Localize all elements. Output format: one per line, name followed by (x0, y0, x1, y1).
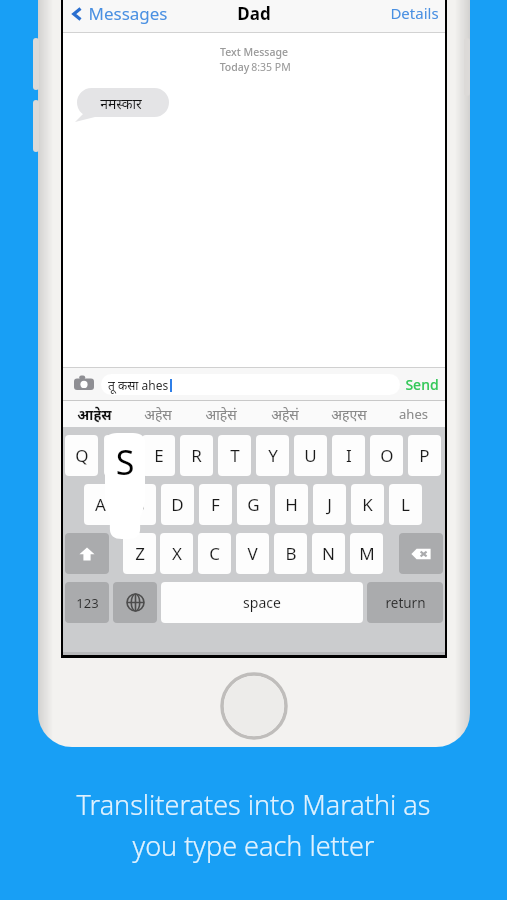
staticText: D (171, 493, 184, 516)
button[interactable]: R (180, 435, 213, 476)
button[interactable]: आहेस (63, 401, 126, 427)
button[interactable]: C (198, 533, 231, 574)
button[interactable]: Backspace (399, 533, 443, 574)
staticText: V (247, 542, 258, 565)
staticText: S (97, 439, 153, 485)
button[interactable]: Z (123, 533, 156, 574)
button[interactable]: E (142, 435, 175, 476)
button[interactable]: Y (256, 435, 289, 476)
button[interactable]: F (199, 484, 232, 525)
button[interactable]: Switch language (113, 582, 157, 623)
staticText: Y (268, 444, 278, 467)
staticText: आहेस (77, 405, 112, 424)
button[interactable]: L (389, 484, 422, 525)
staticText: Z (135, 542, 145, 565)
staticText: space (243, 593, 281, 612)
staticText: A (95, 493, 106, 516)
button[interactable]: आहेसं (189, 401, 253, 427)
staticText: अहएस (331, 405, 367, 424)
button[interactable]: U (294, 435, 327, 476)
button[interactable]: I (332, 435, 365, 476)
button[interactable]: T (218, 435, 251, 476)
staticText: Text Message (220, 45, 288, 59)
staticText: H (285, 493, 298, 516)
button[interactable]: X (160, 533, 193, 574)
staticText: M (359, 542, 375, 565)
staticText: Details (390, 3, 439, 23)
button[interactable]: K (351, 484, 384, 525)
staticText: J (327, 493, 332, 516)
staticText: अहेसं (271, 405, 299, 424)
button[interactable]: ahes (381, 401, 445, 427)
button[interactable]: V (236, 533, 269, 574)
staticText: Messages (88, 2, 168, 25)
staticText: T (230, 444, 240, 467)
button[interactable]: B (274, 533, 307, 574)
staticText: P (419, 444, 430, 467)
staticText: O (380, 444, 394, 467)
button[interactable]: अहएस (317, 401, 381, 427)
staticText: G (247, 493, 260, 516)
button[interactable]: P (408, 435, 441, 476)
staticText: B (285, 542, 297, 565)
button[interactable]: J (313, 484, 346, 525)
staticText: L (401, 493, 410, 516)
staticText: E (154, 444, 164, 467)
button[interactable]: Details (390, 3, 439, 23)
button[interactable]: W (104, 435, 137, 476)
button[interactable]: तू कसा ahes (101, 374, 400, 395)
staticText: C (209, 542, 220, 565)
button[interactable]: Send (405, 375, 439, 394)
button[interactable]: space (161, 582, 363, 623)
button[interactable]: O (370, 435, 403, 476)
staticText: X (172, 542, 182, 565)
button[interactable]: return (367, 582, 443, 623)
staticText: U (304, 444, 317, 467)
staticText: W (113, 444, 129, 467)
staticText: N (322, 542, 335, 565)
button[interactable]: S (123, 484, 156, 525)
button[interactable]: Q (65, 435, 98, 476)
staticText: तू कसा ahes (108, 377, 169, 393)
staticText: Transliterates into Marathi as (0, 786, 507, 823)
button[interactable]: G (237, 484, 270, 525)
staticText: ahes (399, 405, 428, 423)
button[interactable]: अहेस (126, 401, 189, 427)
staticText: आहेसं (205, 405, 237, 424)
staticText: S (135, 493, 145, 516)
button[interactable]: 123 (65, 582, 109, 623)
staticText: अहेस (144, 405, 172, 424)
staticText: 123 (76, 594, 99, 612)
button[interactable]: Messages (69, 2, 168, 25)
button[interactable]: Shift (65, 533, 109, 574)
button[interactable]: अहेसं (253, 401, 317, 427)
staticText: R (191, 444, 202, 467)
button[interactable]: Camera (71, 371, 97, 397)
staticText: you type each letter (0, 827, 507, 864)
button[interactable]: A (84, 484, 117, 525)
staticText: I (346, 444, 352, 467)
button[interactable]: H (275, 484, 308, 525)
staticText: K (362, 493, 373, 516)
staticText: Dad (237, 2, 271, 25)
button[interactable]: N (312, 533, 345, 574)
button[interactable]: D (161, 484, 194, 525)
button[interactable]: M (350, 533, 383, 574)
staticText: Today (218, 60, 251, 74)
staticText: F (211, 493, 220, 516)
staticText: नमस्कार (100, 94, 142, 113)
staticText: 8:35 PM (251, 60, 291, 74)
staticText: Send (405, 375, 439, 394)
staticText: return (385, 594, 426, 612)
staticText: Q (75, 444, 89, 467)
